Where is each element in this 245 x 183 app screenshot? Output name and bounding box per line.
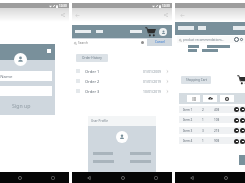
staticText: 21$ (214, 129, 220, 133)
staticText: product recommendations... (183, 38, 225, 42)
button[interactable]: Home (220, 172, 231, 183)
button[interactable]: Increase (240, 118, 245, 123)
button[interactable]: Decrease (234, 128, 239, 133)
button[interactable]: Order 1 (72, 66, 172, 76)
button[interactable]: Item 3 (179, 127, 245, 134)
button[interactable]: Decrease (234, 118, 239, 123)
button[interactable]: Cart (237, 74, 245, 85)
button[interactable]: Cart (145, 26, 156, 37)
button[interactable]: Decrease (234, 139, 239, 144)
button[interactable]: Recents (47, 172, 58, 183)
button[interactable]: Back (73, 11, 81, 19)
button[interactable]: Increase (240, 128, 245, 133)
staticText: Search (78, 41, 88, 45)
button[interactable]: Search (72, 39, 147, 46)
button[interactable]: Item 4 (179, 137, 245, 144)
staticText: Item 1 (183, 108, 193, 112)
staticText: User Profile (91, 119, 108, 123)
staticText: 3 (202, 129, 204, 133)
staticText: Item 2 (183, 118, 193, 122)
button[interactable]: Cancel (147, 38, 172, 46)
button[interactable]: Increase (240, 107, 245, 112)
button[interactable]: Back (186, 172, 197, 183)
staticText: 1 (202, 118, 204, 122)
button[interactable]: Shopping Cart (181, 76, 211, 84)
staticText: 1 (202, 139, 204, 143)
staticText: Shopping Cart (186, 78, 207, 82)
button[interactable]: Sign up (0, 96, 55, 115)
staticText: 90$ (214, 139, 220, 143)
staticText: 40$ (214, 108, 220, 112)
staticText: Item 3 (183, 129, 193, 133)
button[interactable]: Decrease (234, 107, 239, 112)
staticText: 12:30 (162, 4, 170, 8)
staticText: 10/01/2019 (143, 89, 162, 94)
staticText: 2 (202, 108, 204, 112)
button[interactable]: Back (178, 11, 186, 19)
staticText: Cancel (155, 40, 165, 44)
button[interactable]: Item 2 (179, 116, 245, 123)
button[interactable]: Order 2 (72, 76, 172, 86)
button[interactable]: Full Name (0, 71, 52, 81)
staticText: 12:30 (59, 4, 67, 8)
staticText: 01/01/2019 (143, 79, 162, 84)
staticText: 01/01/2009 (143, 69, 162, 74)
button[interactable]: Share (59, 11, 67, 19)
staticText: 10$ (214, 118, 220, 122)
staticText: Order 1 (85, 69, 100, 74)
staticText: Order 2 (85, 79, 100, 84)
button[interactable]: Back (83, 172, 94, 183)
button[interactable]: Home (14, 172, 25, 183)
button[interactable]: Recents (150, 172, 161, 183)
staticText: Order History (82, 56, 102, 60)
button[interactable]: Home (117, 172, 128, 183)
button[interactable]: Order History (76, 54, 108, 62)
staticText: Order 3 (85, 89, 100, 94)
button[interactable]: Item 1 (179, 106, 245, 113)
button[interactable]: Share (162, 11, 170, 19)
staticText: Item 4 (183, 139, 193, 143)
button[interactable]: product recommendations... (177, 36, 245, 43)
staticText: Full Name (0, 73, 13, 79)
button[interactable]: Order 3 (72, 86, 172, 96)
button[interactable]: Increase (240, 139, 245, 144)
staticText: Sign up (12, 102, 31, 109)
